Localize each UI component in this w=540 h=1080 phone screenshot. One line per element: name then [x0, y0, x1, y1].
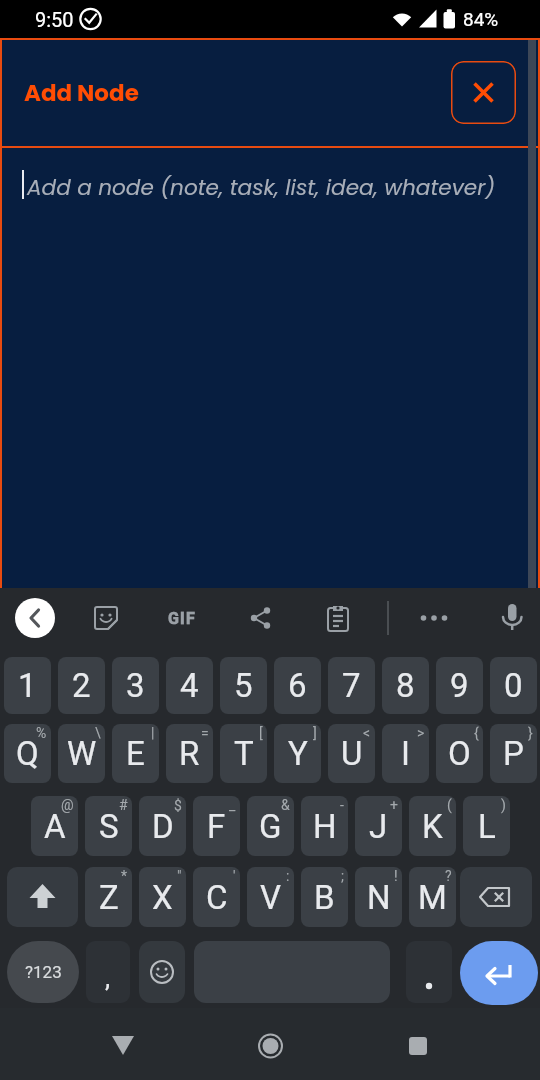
button[interactable] — [246, 1022, 294, 1070]
button[interactable]: 4 — [166, 657, 213, 714]
button[interactable]: ?123 — [7, 941, 79, 1003]
button[interactable] — [460, 867, 532, 927]
button[interactable]: 9 — [436, 657, 483, 714]
staticText: > — [417, 725, 425, 741]
staticText: + — [390, 797, 398, 813]
button[interactable]: 1 — [4, 657, 51, 714]
button[interactable]: A — [31, 796, 78, 856]
button[interactable]: R — [166, 724, 213, 783]
staticText: ] — [313, 725, 317, 741]
button[interactable]: Z — [85, 867, 132, 927]
button[interactable]: 5 — [220, 657, 267, 714]
staticText: # — [119, 797, 128, 813]
button[interactable]: K — [409, 796, 456, 856]
staticText: Y — [288, 734, 308, 773]
button[interactable]: B — [301, 867, 348, 927]
button[interactable]: 8 — [382, 657, 429, 714]
staticText: Add Node — [24, 77, 139, 109]
staticText: _ — [229, 797, 236, 813]
staticText: E — [126, 734, 145, 773]
staticText: % — [36, 725, 47, 741]
button[interactable] — [15, 598, 55, 638]
button[interactable] — [406, 941, 452, 1003]
staticText: , — [105, 963, 111, 993]
button[interactable]: Y — [274, 724, 321, 783]
button[interactable] — [2, 149, 528, 588]
button[interactable]: T — [220, 724, 267, 783]
button[interactable] — [324, 604, 352, 632]
staticText: | — [151, 725, 155, 741]
button[interactable] — [99, 1022, 147, 1070]
button[interactable] — [139, 941, 185, 1003]
button[interactable] — [460, 941, 538, 1005]
button[interactable]: G — [247, 796, 294, 856]
button[interactable] — [394, 1022, 442, 1070]
button[interactable]: 6 — [274, 657, 321, 714]
button[interactable]: GIF — [163, 604, 201, 632]
staticText: I — [401, 734, 410, 773]
staticText: V — [260, 878, 282, 917]
staticText: { — [474, 725, 479, 741]
staticText: * — [121, 868, 128, 884]
button[interactable] — [7, 867, 78, 927]
staticText: - — [340, 797, 344, 813]
staticText: ?123 — [25, 962, 62, 982]
button[interactable]: F — [193, 796, 240, 856]
button[interactable] — [451, 61, 516, 124]
staticText: 7 — [342, 666, 361, 705]
button[interactable]: E — [112, 724, 159, 783]
button[interactable] — [92, 604, 120, 632]
staticText: } — [528, 725, 533, 741]
staticText: 4 — [180, 666, 199, 705]
staticText: \ — [95, 725, 101, 741]
button[interactable]: M — [409, 867, 456, 927]
staticText: S — [99, 807, 119, 846]
staticText: ) — [501, 797, 506, 813]
button[interactable]: C — [193, 867, 240, 927]
button[interactable]: L — [463, 796, 510, 856]
staticText: 5 — [234, 666, 253, 705]
staticText: O — [448, 734, 471, 773]
staticText: C — [206, 878, 228, 917]
staticText: < — [363, 725, 371, 741]
button[interactable]: 3 — [112, 657, 159, 714]
button[interactable]: X — [139, 867, 186, 927]
button[interactable]: D — [139, 796, 186, 856]
staticText: : — [286, 868, 290, 884]
button[interactable]: 2 — [58, 657, 105, 714]
staticText: F — [207, 807, 226, 846]
button[interactable]: O — [436, 724, 483, 783]
button[interactable] — [246, 604, 274, 632]
staticText: K — [422, 807, 443, 846]
button[interactable]: N — [355, 867, 402, 927]
button[interactable]: I — [382, 724, 429, 783]
staticText: Q — [16, 734, 39, 773]
staticText: A — [44, 807, 66, 846]
staticText: ( — [447, 797, 452, 813]
staticText: 6 — [288, 666, 307, 705]
staticText: 9:50 — [35, 8, 74, 31]
button[interactable]: S — [85, 796, 132, 856]
button[interactable]: H — [301, 796, 348, 856]
button[interactable]: V — [247, 867, 294, 927]
staticText: = — [201, 725, 209, 741]
staticText: 8 — [396, 666, 415, 705]
button[interactable]: 0 — [490, 657, 537, 714]
staticText: " — [177, 868, 182, 884]
button[interactable] — [498, 602, 526, 634]
staticText: X — [152, 878, 173, 917]
button[interactable]: , — [86, 941, 130, 1003]
staticText: R — [179, 734, 200, 773]
staticText: D — [152, 807, 174, 846]
staticText: & — [281, 797, 290, 813]
button[interactable] — [419, 604, 449, 632]
button[interactable]: U — [328, 724, 375, 783]
button[interactable]: Q — [4, 724, 51, 783]
button[interactable]: W — [58, 724, 105, 783]
button[interactable]: P — [490, 724, 537, 783]
staticText: G — [259, 807, 282, 846]
staticText: 84% — [463, 8, 499, 30]
button[interactable]: J — [355, 796, 402, 856]
button[interactable]: 7 — [328, 657, 375, 714]
